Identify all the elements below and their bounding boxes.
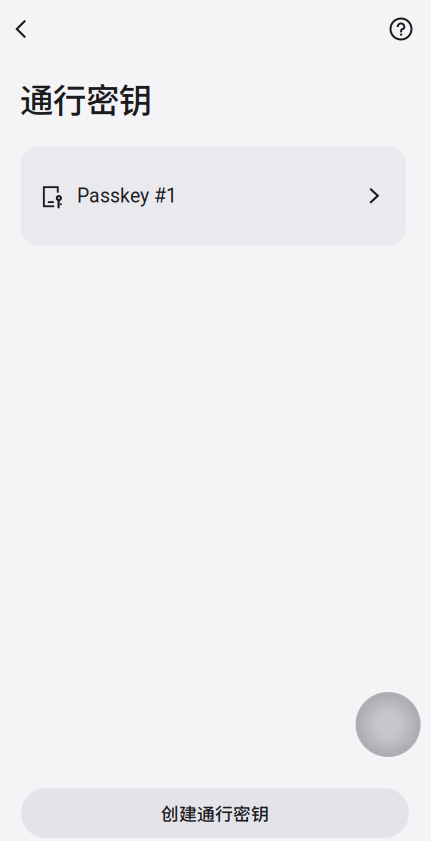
staticText: 创建通行密钥 (161, 800, 269, 826)
button[interactable]: Help (380, 8, 422, 50)
button[interactable]: 创建通行密钥 (21, 788, 409, 838)
staticText: Passkey #1 (77, 184, 177, 207)
button[interactable]: Back (0, 8, 42, 50)
button[interactable]: Passkey #1 (21, 146, 406, 245)
staticText: 通行密钥 (20, 74, 152, 122)
